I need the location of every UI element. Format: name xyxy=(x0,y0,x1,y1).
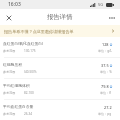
staticText: 130-175 xyxy=(24,49,36,53)
button[interactable]: Close xyxy=(3,12,14,23)
staticText: 单位：pg xyxy=(98,112,112,116)
staticText: 37.5 xyxy=(101,63,109,68)
staticText: 平均血红蛋白含量 xyxy=(3,104,34,109)
staticText: 128 xyxy=(102,42,109,47)
staticText: 参考范围 xyxy=(3,49,16,53)
staticText: 单位：% xyxy=(100,70,112,74)
button[interactable]: 报告单看不懂？点这里教你读懂报告单 xyxy=(0,25,120,37)
staticText: 平均红细胞体积 xyxy=(3,83,30,88)
staticText: 82-100 xyxy=(24,91,34,95)
staticText: (40-50)% xyxy=(24,70,37,74)
staticText: 报告详情 xyxy=(47,13,73,21)
staticText: 27.2 xyxy=(104,105,112,110)
staticText: 16:03 xyxy=(8,1,21,8)
button[interactable]: 平均血红蛋白含量 xyxy=(0,100,120,120)
staticText: 血红蛋白(氧化血红蛋白) xyxy=(3,41,44,46)
staticText: 79.8 xyxy=(101,84,109,89)
button[interactable]: 红细胞压积 xyxy=(0,58,120,78)
staticText: 单位：fl xyxy=(100,91,112,95)
staticText: 红细胞压积 xyxy=(3,62,22,67)
staticText: 26-34 xyxy=(24,112,33,116)
button[interactable]: More options xyxy=(106,12,117,23)
staticText: 参考范围 xyxy=(3,70,16,74)
staticText: 5G xyxy=(98,2,104,7)
staticText: 单位：g/L xyxy=(98,49,112,53)
staticText: 参考范围 xyxy=(3,112,16,116)
staticText: 参考范围 xyxy=(3,91,16,95)
button[interactable]: 平均红细胞体积 xyxy=(0,79,120,99)
staticText: 报告单看不懂？点这里教你读懂报告单 xyxy=(4,29,74,34)
button[interactable]: 血红蛋白(氧化血红蛋白) xyxy=(0,37,120,57)
